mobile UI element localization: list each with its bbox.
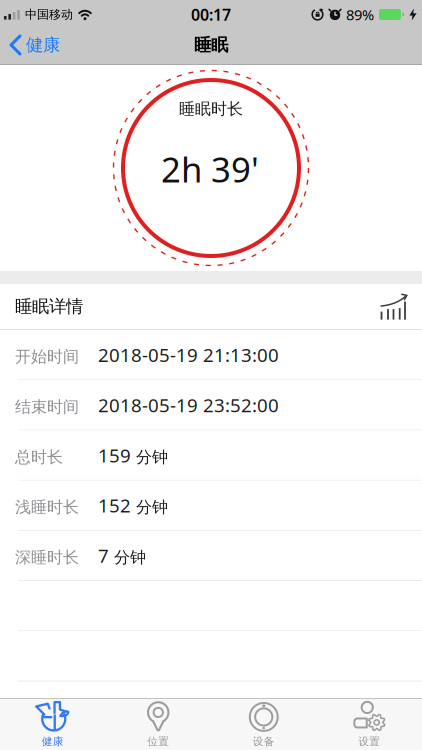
- staticText: 开始时间: [15, 347, 79, 366]
- staticText: 2h 39': [161, 146, 259, 192]
- staticText: 位置: [147, 735, 169, 748]
- staticText: 设置: [358, 735, 380, 748]
- staticText: 分钟: [136, 447, 168, 467]
- button[interactable]: 设置: [316, 699, 422, 750]
- staticText: 2018-05-19 23:52:00: [98, 393, 279, 417]
- staticText: 设备: [253, 735, 275, 748]
- button[interactable]: 设备: [211, 699, 316, 750]
- staticText: 分钟: [136, 497, 168, 517]
- button[interactable]: 健康: [0, 699, 105, 750]
- staticText: 152: [98, 493, 136, 518]
- staticText: 结束时间: [15, 397, 79, 417]
- button[interactable]: 位置: [105, 699, 211, 750]
- staticText: 00:17: [191, 4, 231, 25]
- staticText: 健康: [26, 34, 60, 56]
- staticText: 深睡时长: [15, 548, 79, 567]
- staticText: 89%: [346, 5, 374, 24]
- staticText: 睡眠: [194, 34, 228, 56]
- staticText: 159: [98, 443, 136, 468]
- button[interactable]: 查看睡眠图表: [380, 294, 410, 320]
- staticText: 分钟: [114, 548, 146, 567]
- staticText: 7: [98, 543, 114, 568]
- staticText: 浅睡时长: [15, 497, 79, 517]
- button[interactable]: 返回健康: [0, 34, 60, 56]
- staticText: 2018-05-19 21:13:00: [98, 342, 279, 367]
- staticText: 健康: [42, 735, 64, 748]
- staticText: 睡眠详情: [15, 296, 83, 317]
- staticText: 总时长: [15, 447, 63, 467]
- staticText: 睡眠时长: [179, 99, 243, 119]
- staticText: 中国移动: [25, 7, 73, 22]
